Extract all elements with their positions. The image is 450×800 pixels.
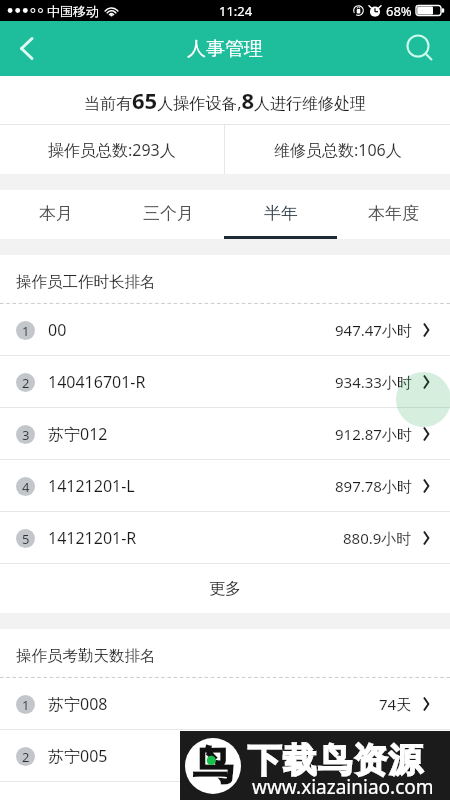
- staticText: 操作员工作时长排名: [16, 272, 156, 292]
- staticText: 鸟: [193, 740, 233, 790]
- staticText: 897.78小时: [335, 476, 412, 496]
- staticText: 68%: [386, 2, 412, 20]
- staticText: 14121201-L: [48, 475, 135, 497]
- staticText: 下载鸟资源: [247, 739, 423, 782]
- staticText: 本月: [39, 203, 73, 224]
- button[interactable]: 3: [0, 408, 450, 460]
- staticText: 4: [22, 478, 30, 496]
- staticText: 140416701-R: [48, 371, 146, 393]
- staticText: 912.87小时: [335, 424, 412, 444]
- staticText: 苏宁005: [48, 745, 108, 767]
- button[interactable]: 2: [0, 730, 450, 782]
- staticText: 维修员总数:106人: [274, 139, 402, 161]
- staticText: 74天: [379, 694, 412, 714]
- staticText: 苏宁012: [48, 423, 108, 445]
- staticText: 1: [22, 696, 30, 714]
- staticText: www.xiazainiao.com: [252, 774, 434, 800]
- staticText: 947.47小时: [335, 320, 412, 340]
- staticText: 3: [22, 426, 30, 444]
- button[interactable]: 2: [0, 356, 450, 408]
- button[interactable]: 维修员总数:106人: [225, 125, 450, 174]
- staticText: 880.9小时: [343, 528, 412, 548]
- staticText: 中国移动: [47, 3, 99, 19]
- staticText: 半年: [264, 203, 298, 224]
- staticText: 操作员考勤天数排名: [16, 646, 156, 666]
- staticText: 14121201-R: [48, 527, 137, 549]
- button[interactable]: 三个月: [112, 190, 224, 239]
- button[interactable]: 半年: [224, 190, 337, 239]
- button[interactable]: 更多: [0, 564, 450, 613]
- button[interactable]: 4: [0, 460, 450, 512]
- button[interactable]: 操作员总数:293人: [0, 125, 224, 174]
- button[interactable]: Back: [0, 21, 50, 76]
- button[interactable]: 本年度: [337, 190, 450, 239]
- staticText: 苏宁008: [48, 693, 108, 715]
- staticText: 5: [22, 530, 30, 548]
- staticText: 934.33小时: [335, 372, 412, 392]
- button[interactable]: 1: [0, 304, 450, 356]
- button[interactable]: Search: [396, 21, 450, 76]
- staticText: 2: [22, 748, 30, 766]
- button[interactable]: 本月: [0, 190, 112, 239]
- staticText: 人事管理: [187, 37, 263, 61]
- staticText: 本年度: [368, 203, 419, 224]
- staticText: 当前有65人操作设备,8人进行维修处理: [84, 85, 367, 115]
- button[interactable]: 5: [0, 512, 450, 564]
- staticText: 1: [22, 322, 30, 340]
- staticText: 三个月: [143, 203, 194, 224]
- button[interactable]: 1: [0, 678, 450, 730]
- staticText: 更多: [209, 579, 241, 599]
- staticText: 11:24: [219, 2, 253, 20]
- staticText: 00: [48, 319, 67, 341]
- staticText: 操作员总数:293人: [48, 139, 176, 161]
- staticText: 2: [22, 374, 30, 392]
